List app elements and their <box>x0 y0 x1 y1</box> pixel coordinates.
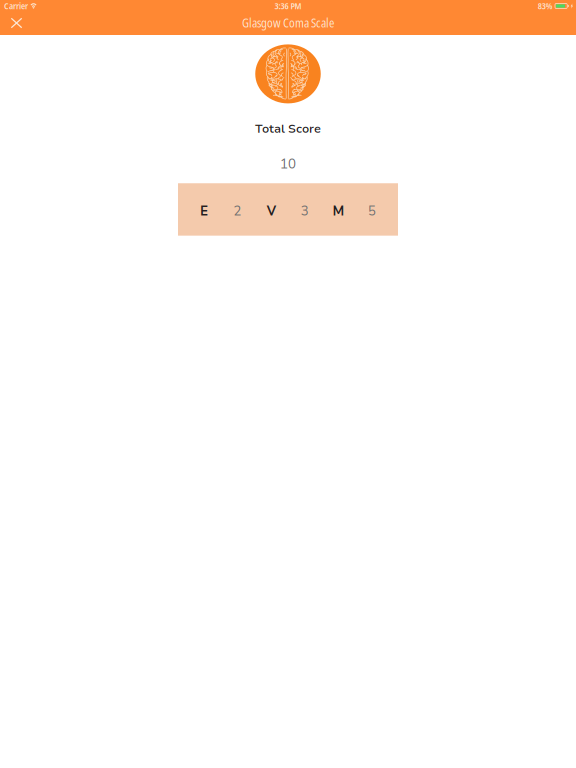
staticText: Total Score <box>255 121 321 137</box>
staticText: M <box>332 202 344 220</box>
button[interactable]: E <box>187 183 221 236</box>
button[interactable]: 5 <box>355 183 389 236</box>
staticText: E <box>200 202 208 220</box>
button[interactable]: V <box>254 183 288 236</box>
staticText: Glasgow Coma Scale <box>242 15 334 31</box>
staticText: 83% <box>538 0 553 12</box>
button[interactable]: 2 <box>221 183 254 236</box>
staticText: 10 <box>280 155 296 173</box>
staticText: 3 <box>301 202 309 220</box>
staticText: 2 <box>234 202 242 220</box>
staticText: Carrier <box>4 0 28 12</box>
button[interactable]: 3 <box>288 183 322 236</box>
staticText: 3:36 PM <box>274 0 301 12</box>
button[interactable]: M <box>322 183 355 236</box>
staticText: V <box>267 202 276 220</box>
button[interactable]: Close <box>0 11 33 34</box>
staticText: 5 <box>368 202 376 220</box>
